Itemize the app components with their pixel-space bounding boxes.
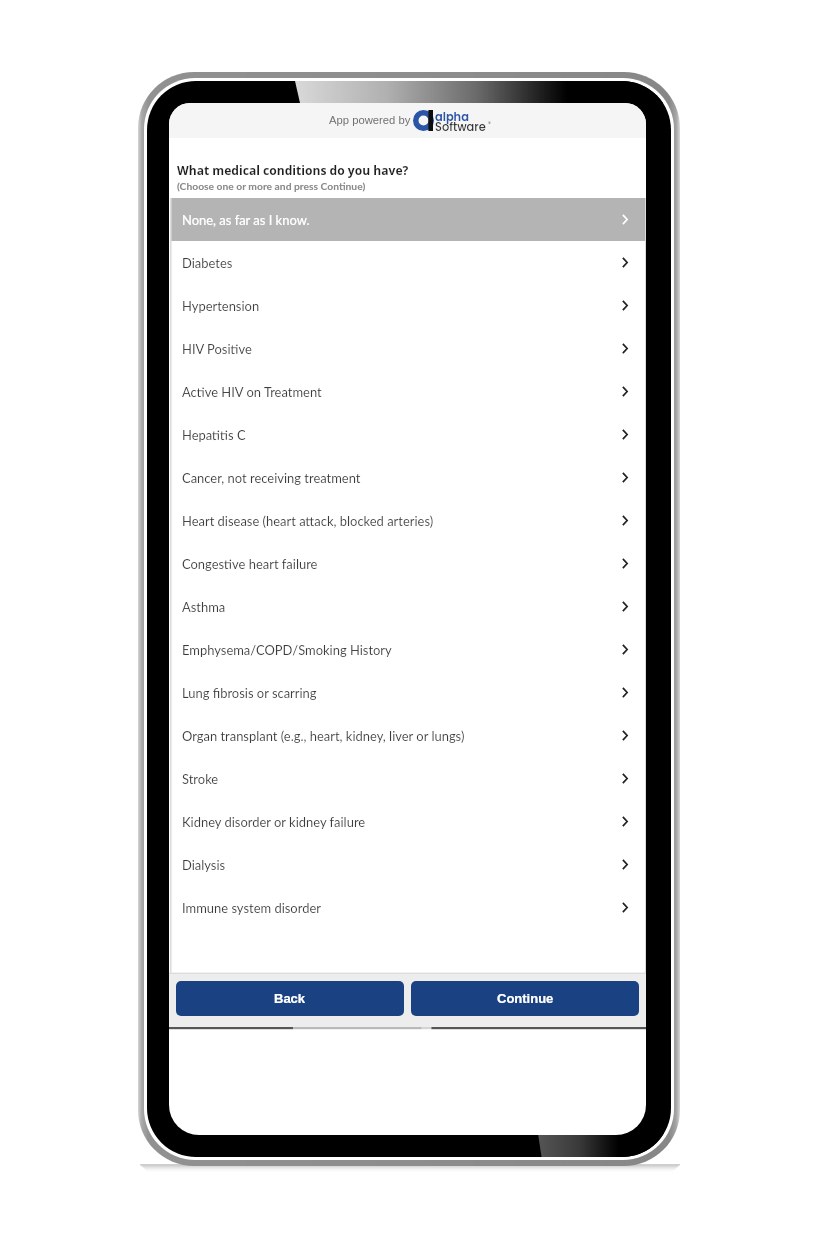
staticText: Hypertension xyxy=(182,298,260,314)
staticText: Lung fibrosis or scarring xyxy=(182,685,317,701)
button[interactable]: HIV Positive xyxy=(171,327,645,370)
button[interactable]: Kidney disorder or kidney failure xyxy=(171,800,645,843)
staticText: Heart disease (heart attack, blocked art… xyxy=(182,513,434,529)
button[interactable]: Hepatitis C xyxy=(171,413,645,456)
button[interactable]: Lung fibrosis or scarring xyxy=(171,671,645,714)
staticText: None, as far as I know. xyxy=(182,212,310,228)
staticText: Emphysema/COPD/Smoking History xyxy=(182,642,392,658)
staticText: (Choose one or more and press Continue) xyxy=(177,180,366,192)
staticText: Continue xyxy=(497,991,554,1006)
button[interactable]: Diabetes xyxy=(171,241,645,284)
button[interactable]: Stroke xyxy=(171,757,645,800)
staticText: Active HIV on Treatment xyxy=(182,384,322,400)
staticText: Kidney disorder or kidney failure xyxy=(182,814,366,830)
button[interactable]: Organ transplant (e.g., heart, kidney, l… xyxy=(171,714,645,757)
staticText: Immune system disorder xyxy=(182,900,321,916)
staticText: Hepatitis C xyxy=(182,427,246,443)
staticText: Dialysis xyxy=(182,857,226,873)
staticText: Asthma xyxy=(182,599,226,615)
staticText: alpha xyxy=(435,109,469,125)
button[interactable]: Congestive heart failure xyxy=(171,542,645,585)
button[interactable]: Heart disease (heart attack, blocked art… xyxy=(171,499,645,542)
staticText: Organ transplant (e.g., heart, kidney, l… xyxy=(182,728,465,744)
button[interactable]: Back xyxy=(176,981,404,1016)
button[interactable]: Asthma xyxy=(171,585,645,628)
staticText: Diabetes xyxy=(182,255,233,271)
button[interactable]: Hypertension xyxy=(171,284,645,327)
staticText: Congestive heart failure xyxy=(182,556,318,572)
staticText: Stroke xyxy=(182,771,219,787)
staticText: Software xyxy=(435,119,486,135)
staticText: HIV Positive xyxy=(182,341,252,357)
button[interactable]: None, as far as I know. xyxy=(171,198,645,241)
staticText: What medical conditions do you have? xyxy=(177,162,409,178)
button[interactable]: Dialysis xyxy=(171,843,645,886)
button[interactable]: Emphysema/COPD/Smoking History xyxy=(171,628,645,671)
staticText: ® xyxy=(488,119,491,127)
staticText: Cancer, not receiving treatment xyxy=(182,470,361,486)
button[interactable]: Continue xyxy=(411,981,639,1016)
button[interactable]: Cancer, not receiving treatment xyxy=(171,456,645,499)
staticText: App powered by xyxy=(329,114,411,127)
button[interactable]: Immune system disorder xyxy=(171,886,645,929)
staticText: Back xyxy=(274,991,306,1006)
button[interactable]: Active HIV on Treatment xyxy=(171,370,645,413)
